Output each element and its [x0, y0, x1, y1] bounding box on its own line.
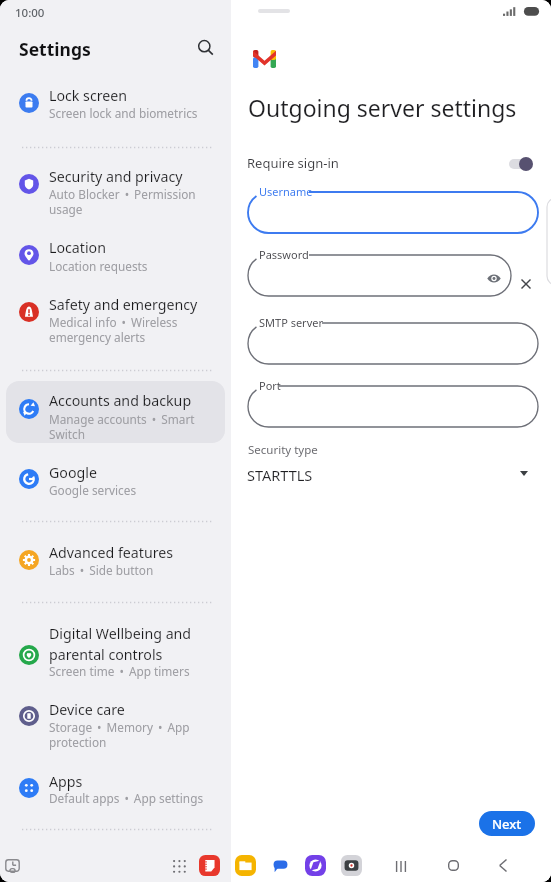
staticText: 10:00	[15, 5, 45, 21]
staticText: Port	[259, 378, 281, 393]
button[interactable]: Clear	[512, 270, 540, 298]
button[interactable]: All apps	[169, 856, 189, 876]
staticText: Next	[492, 815, 522, 833]
button[interactable]: Messages	[270, 855, 291, 876]
button[interactable]: Screen recorder	[1, 855, 23, 877]
button[interactable]	[6, 285, 225, 348]
button[interactable]: Home	[442, 854, 464, 876]
staticText: Settings	[19, 37, 91, 61]
staticText: Lock screen	[49, 86, 128, 105]
button[interactable]	[6, 76, 225, 123]
staticText: Screen time • App timers	[49, 663, 219, 679]
button[interactable]: SMTP server	[248, 315, 538, 364]
button[interactable]	[6, 228, 225, 276]
button[interactable]	[6, 614, 225, 680]
button[interactable]	[6, 762, 225, 808]
staticText: Labs • Side button	[49, 562, 219, 578]
button[interactable]: Camera	[341, 855, 362, 876]
button[interactable]	[6, 381, 225, 443]
staticText: Password	[259, 247, 309, 262]
button[interactable]: Port	[248, 378, 538, 427]
staticText: Location requests	[49, 258, 219, 274]
staticText: Google services	[49, 482, 219, 498]
button[interactable]: Internet	[305, 855, 326, 876]
staticText: Google	[49, 463, 97, 482]
button[interactable]	[231, 148, 551, 178]
staticText: Username	[259, 184, 313, 199]
staticText: Safety and emergency	[49, 295, 198, 314]
staticText: Location	[49, 238, 106, 257]
button[interactable]: Recent apps	[390, 855, 412, 877]
staticText: Require sign-in	[247, 154, 339, 172]
button[interactable]: Samsung Notes	[199, 855, 220, 876]
staticText: STARTTLS	[247, 465, 313, 485]
staticText: Advanced features	[49, 543, 174, 562]
staticText: Auto Blocker • Permission usage	[49, 186, 219, 218]
button[interactable]: Search	[191, 33, 220, 62]
button[interactable]	[6, 533, 225, 580]
button[interactable]	[6, 157, 225, 220]
button[interactable]: Back	[492, 854, 514, 876]
button[interactable]	[6, 690, 225, 753]
staticText: Device care	[49, 700, 125, 719]
staticText: Storage • Memory • App protection	[49, 719, 219, 751]
button[interactable]	[6, 453, 225, 500]
staticText: Manage accounts • Smart Switch	[49, 411, 219, 443]
button[interactable]: Username	[248, 184, 538, 233]
staticText: Security type	[248, 442, 318, 458]
staticText: Medical info • Wireless emergency alerts	[49, 314, 219, 346]
staticText: Apps	[49, 772, 83, 791]
staticText: Outgoing server settings	[248, 92, 517, 123]
staticText: Digital Wellbeing and parental controls	[49, 624, 192, 664]
staticText: Default apps • App settings	[49, 790, 219, 806]
button[interactable]: Show password	[483, 267, 505, 289]
button[interactable]: Password	[248, 247, 511, 296]
staticText: Screen lock and biometrics	[49, 105, 219, 121]
button[interactable]: Next	[479, 811, 535, 836]
staticText: Security and privacy	[49, 167, 183, 186]
button[interactable]	[241, 462, 531, 490]
staticText: Accounts and backup	[49, 391, 192, 410]
button[interactable]: My Files	[235, 855, 256, 876]
staticText: SMTP server	[259, 315, 323, 330]
